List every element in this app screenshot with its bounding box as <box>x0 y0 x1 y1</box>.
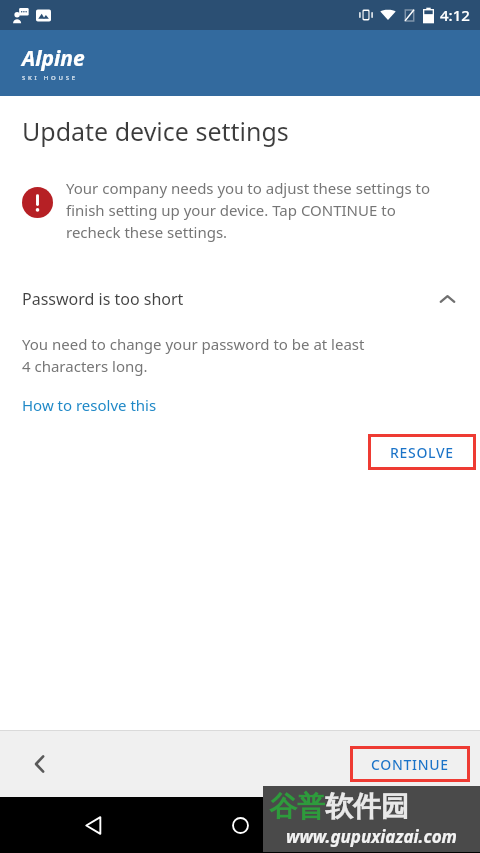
staticText: 谷普 <box>269 789 325 824</box>
staticText: Password is too short <box>22 288 432 310</box>
staticText: 4:12 <box>440 5 470 25</box>
staticText: You need to change your password to be a… <box>22 334 365 377</box>
staticText: Alpine <box>22 44 85 73</box>
button[interactable]: CONTINUE <box>350 746 470 782</box>
staticText: 软件园 <box>325 789 409 824</box>
button[interactable]: Back <box>18 742 62 786</box>
button[interactable]: RESOLVE <box>368 434 476 470</box>
staticText: How to resolve this <box>22 395 157 415</box>
button[interactable]: Back <box>72 804 114 846</box>
staticText: Update device settings <box>22 114 289 148</box>
staticText: RESOLVE <box>390 443 454 462</box>
staticText: CONTINUE <box>371 755 449 774</box>
staticText: S K I H O U S E <box>22 74 76 82</box>
button[interactable]: Home <box>219 804 261 846</box>
other: Collapse section <box>432 284 462 314</box>
button[interactable]: Password is too short <box>0 278 480 320</box>
button[interactable]: How to resolve this <box>22 393 157 417</box>
staticText: www.gupuxiazai.com <box>269 825 474 848</box>
staticText: Your company needs you to adjust these s… <box>66 178 446 243</box>
